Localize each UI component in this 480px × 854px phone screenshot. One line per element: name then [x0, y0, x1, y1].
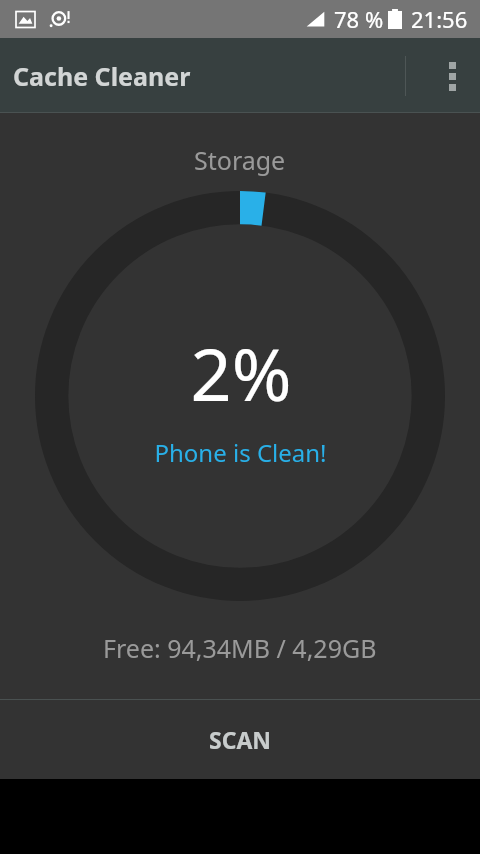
staticText: SCAN — [209, 724, 272, 755]
button[interactable]: More options — [424, 48, 480, 104]
staticText: Phone is Clean! — [154, 436, 327, 469]
staticText: Storage — [194, 143, 286, 177]
staticText: 78 % — [334, 4, 384, 34]
staticText: Free: 94,34MB / 4,29GB — [103, 631, 377, 665]
button[interactable]: SCAN — [0, 700, 480, 779]
staticText: Cache Cleaner — [13, 59, 191, 93]
staticText: 2% — [190, 324, 292, 422]
staticText: 21:56 — [411, 4, 468, 34]
